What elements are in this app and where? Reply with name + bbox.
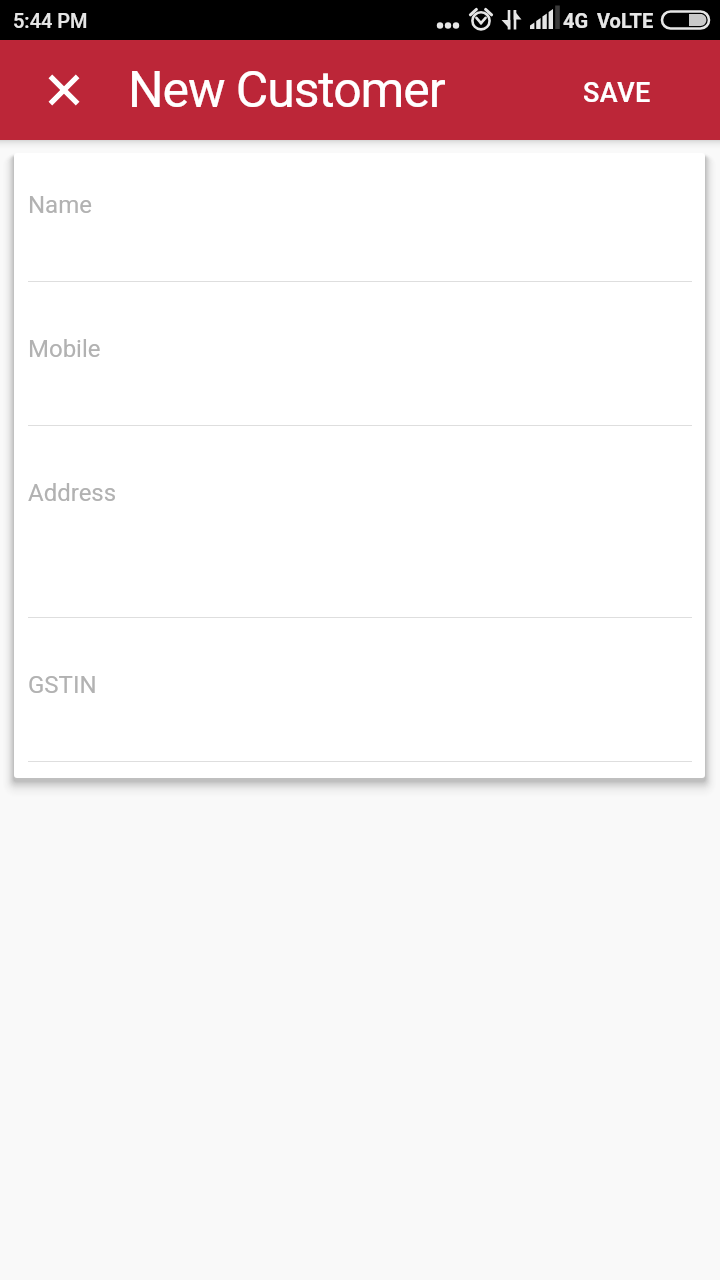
- button[interactable]: Name: [14, 153, 705, 282]
- button[interactable]: SAVE: [549, 51, 720, 129]
- staticText: VoLTE: [597, 9, 654, 32]
- button[interactable]: Mobile: [14, 282, 705, 426]
- staticText: Name: [28, 191, 92, 219]
- staticText: New Customer: [128, 61, 445, 120]
- staticText: 5:44 PM: [13, 9, 88, 32]
- staticText: Mobile: [28, 335, 101, 363]
- staticText: SAVE: [583, 77, 651, 109]
- button[interactable]: Close: [28, 54, 100, 126]
- staticText: Address: [28, 479, 117, 507]
- button[interactable]: GSTIN: [14, 618, 705, 762]
- staticText: 4G: [563, 9, 589, 32]
- button[interactable]: Address: [14, 426, 705, 618]
- staticText: GSTIN: [28, 671, 97, 699]
